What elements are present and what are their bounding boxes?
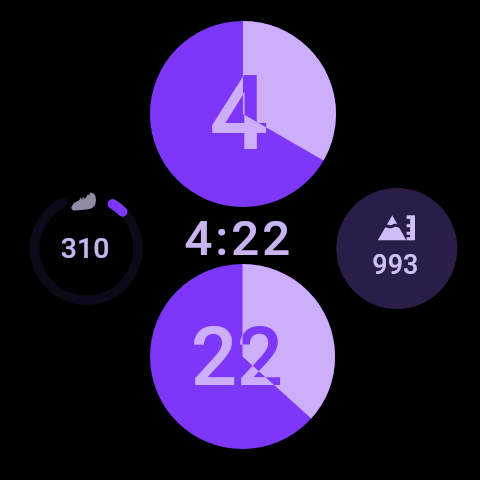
button[interactable]	[34, 196, 139, 301]
button[interactable]	[150, 21, 336, 207]
button[interactable]	[150, 264, 335, 449]
button[interactable]	[336, 188, 457, 309]
